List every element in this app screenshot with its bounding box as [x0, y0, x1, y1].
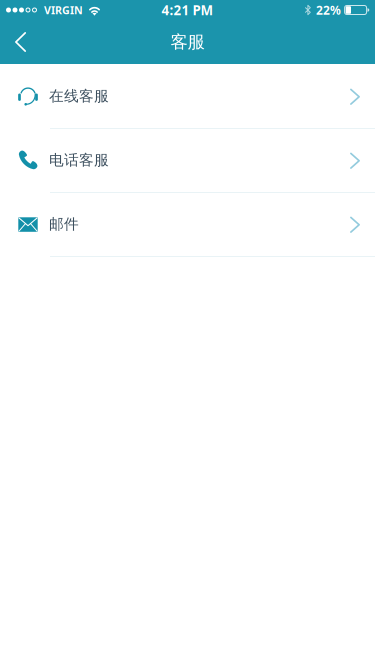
staticText: 22% — [316, 2, 341, 18]
button[interactable]: 在线客服 — [0, 64, 375, 128]
staticText: 客服 — [170, 31, 204, 53]
button[interactable]: Back — [0, 20, 48, 64]
button[interactable]: 邮件 — [0, 192, 375, 256]
staticText: 邮件 — [49, 215, 79, 233]
button[interactable]: 电话客服 — [0, 128, 375, 192]
staticText: 4:21 PM — [161, 1, 213, 19]
staticText: VIRGIN — [44, 3, 83, 17]
staticText: 在线客服 — [49, 87, 109, 105]
staticText: 电话客服 — [49, 151, 109, 169]
